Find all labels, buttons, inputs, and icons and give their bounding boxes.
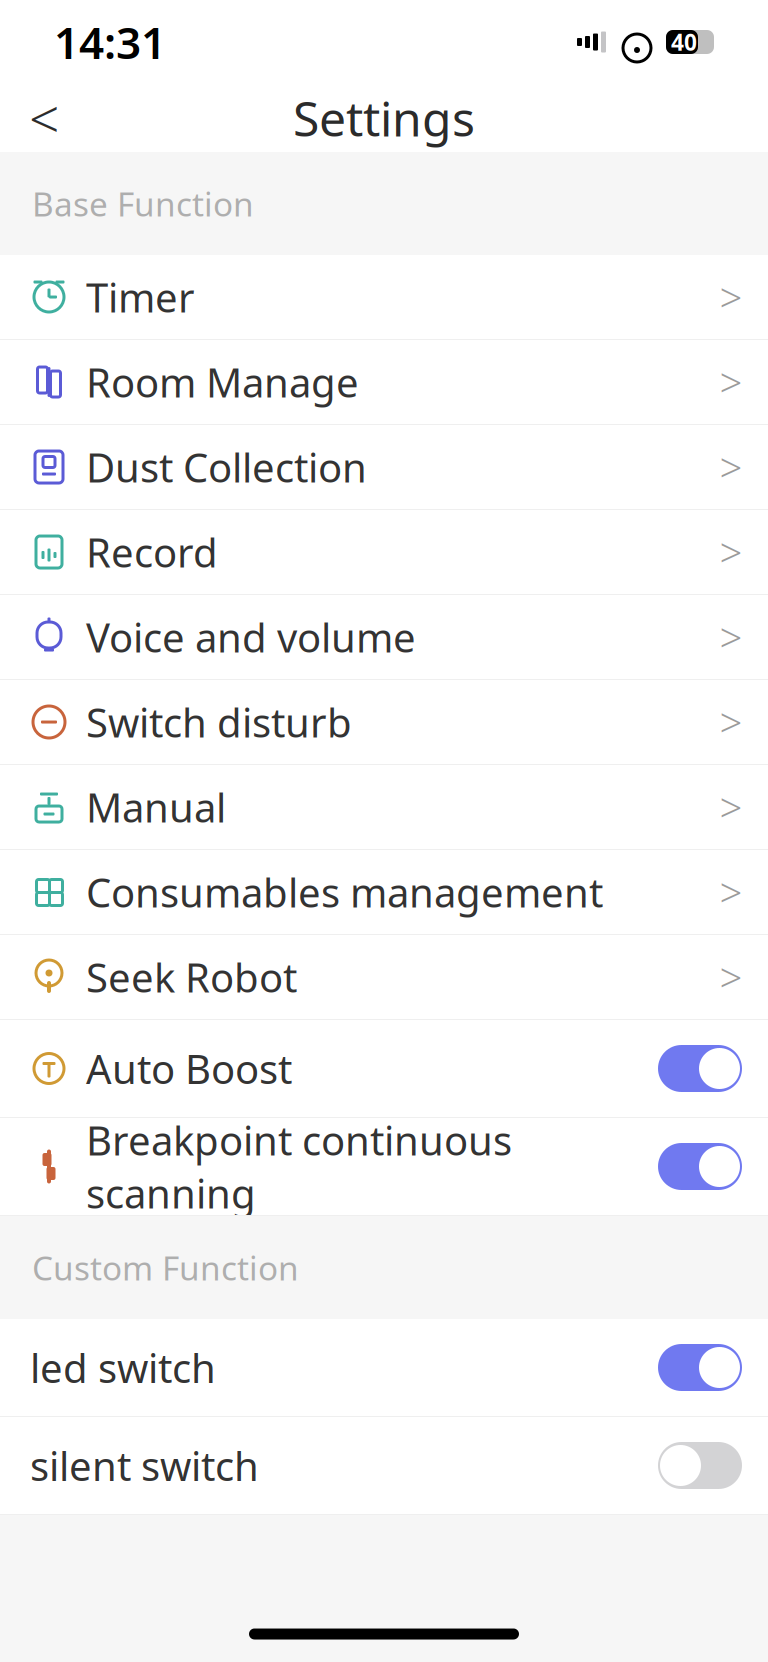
staticText: Timer [86,270,195,323]
button[interactable]: Consumables management [0,850,768,935]
button[interactable]: Switch disturb [0,680,768,765]
staticText: Consumables management [86,865,603,918]
button[interactable]: Record [0,510,768,595]
button[interactable]: silent switch [0,1417,768,1515]
staticText: > [719,610,742,663]
staticText: silent switch [30,1439,259,1492]
staticText: < [29,83,59,153]
button[interactable]: Dust Collection [0,425,768,510]
staticText: Switch disturb [86,695,352,748]
button[interactable]: Timer [0,255,768,340]
staticText: > [719,865,742,918]
staticText: 14:31 [54,13,166,71]
staticText: > [719,525,742,578]
staticText: 40 [671,27,697,57]
staticText: Settings [293,86,475,150]
staticText: > [719,950,742,1003]
staticText: Auto Boost [86,1042,292,1095]
staticText: > [719,440,742,493]
staticText: Breakpoint continuous scanning [86,1113,512,1220]
button[interactable]: Manual [0,765,768,850]
staticText: > [719,780,742,833]
staticText: Seek Robot [86,950,297,1003]
staticText: > [719,695,742,748]
staticText: Voice and volume [86,610,416,663]
staticText: Record [86,525,218,578]
button[interactable]: Seek Robot [0,935,768,1020]
button[interactable]: Back [14,88,74,148]
staticText: Room Manage [86,355,359,408]
staticText: led switch [30,1341,216,1394]
button[interactable]: Auto Boost [0,1020,768,1118]
button[interactable]: Breakpoint continuous scanning [0,1118,768,1216]
button[interactable]: Voice and volume [0,595,768,680]
staticText: Manual [86,780,226,833]
button[interactable]: Room Manage [0,340,768,425]
staticText: > [719,270,742,323]
staticText: > [719,355,742,408]
staticText: Base Function [32,181,254,226]
staticText: Dust Collection [86,440,367,493]
staticText: Custom Function [32,1245,299,1290]
button[interactable]: led switch [0,1319,768,1417]
